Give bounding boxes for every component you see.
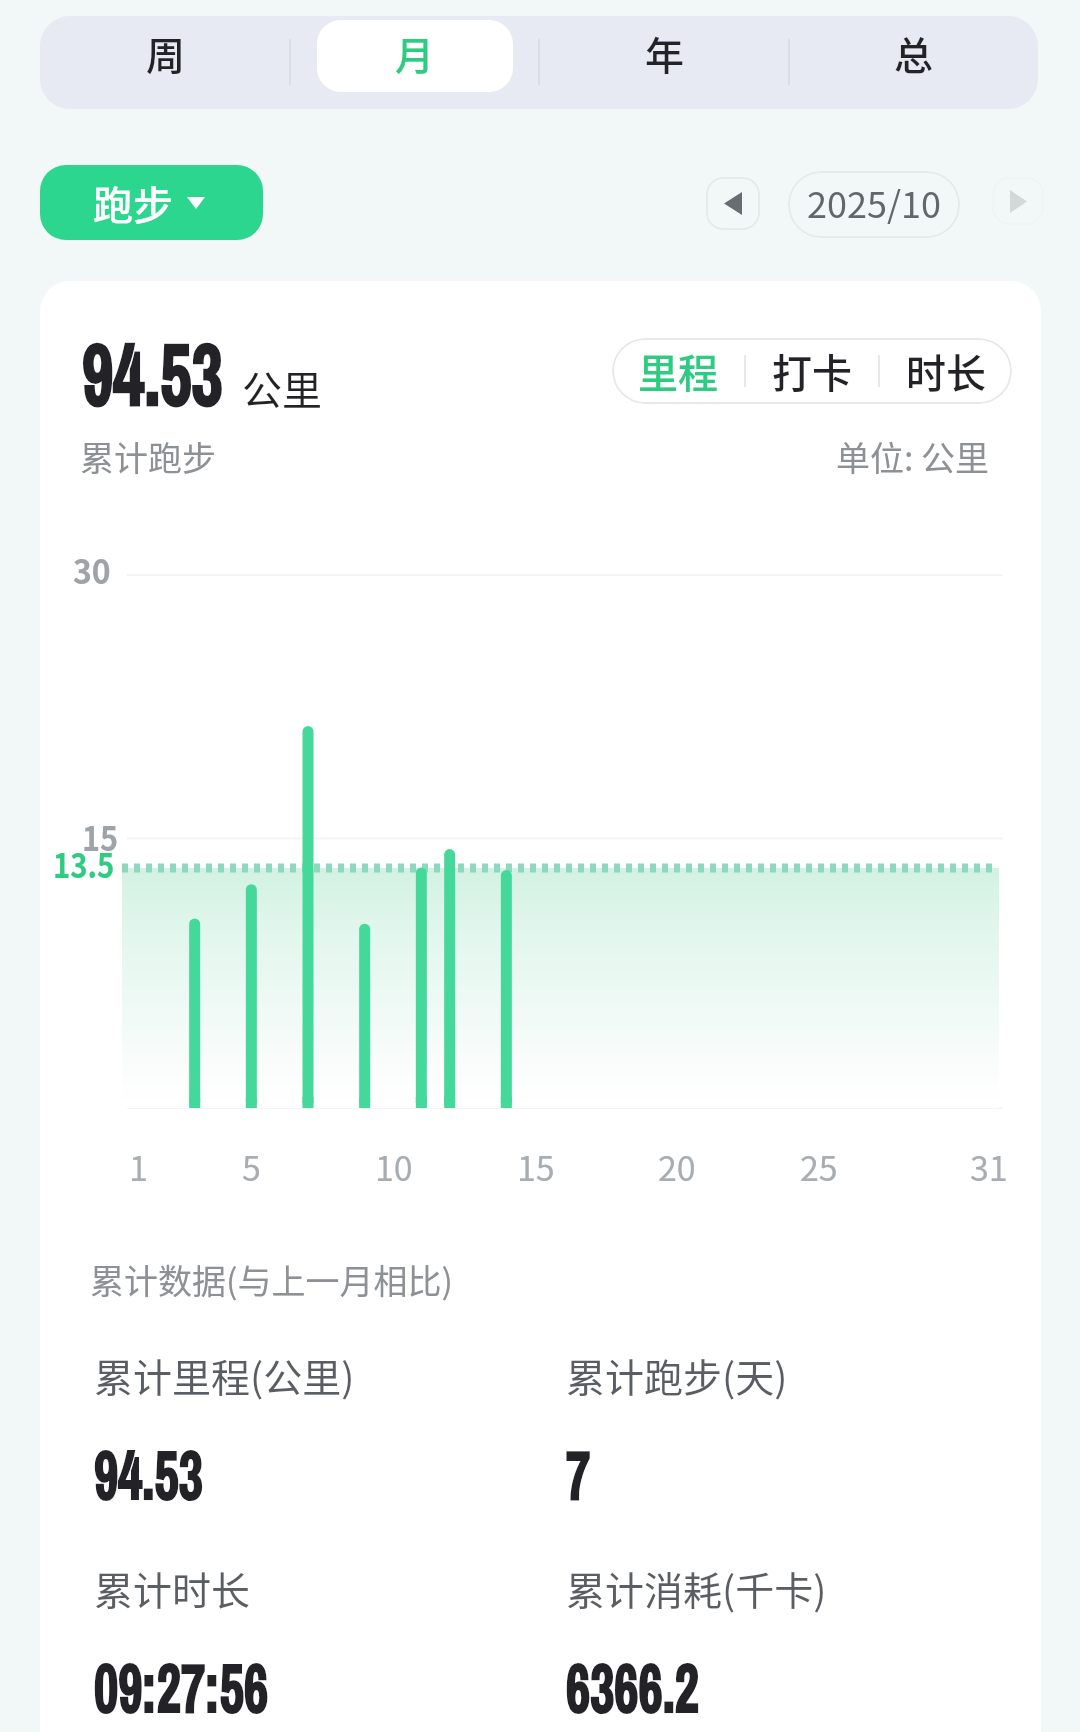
staticText: 7 — [566, 1429, 591, 1521]
staticText: 公里 — [242, 359, 322, 417]
staticText: 累计跑步(天) — [566, 1347, 788, 1403]
button[interactable]: 时长 — [906, 342, 986, 400]
button[interactable]: 打卡 — [772, 342, 852, 400]
staticText: 20 — [658, 1142, 696, 1191]
staticText: 6366.2 — [566, 1642, 699, 1732]
button[interactable]: 跑步 — [40, 165, 263, 240]
staticText: 周 — [146, 25, 186, 81]
button[interactable]: 月 — [289, 16, 538, 109]
button[interactable]: Previous month — [706, 177, 760, 230]
staticText: 31 — [970, 1142, 1008, 1191]
staticText: 13.5 — [53, 839, 115, 888]
staticText: 10 — [375, 1142, 413, 1191]
button[interactable]: Next month — [992, 177, 1044, 225]
staticText: 时长 — [906, 342, 986, 400]
button[interactable]: 2025/10 — [788, 171, 960, 238]
staticText: 2025/10 — [807, 176, 941, 228]
staticText: 15 — [517, 1142, 555, 1191]
staticText: 1 — [129, 1142, 148, 1191]
staticText: 94.53 — [94, 1429, 203, 1521]
button[interactable]: 年 — [539, 16, 788, 109]
staticText: 月 — [395, 25, 435, 81]
staticText: 累计跑步 — [80, 432, 216, 481]
staticText: 年 — [645, 25, 685, 81]
staticText: 30 — [73, 545, 111, 594]
staticText: 累计时长 — [94, 1560, 251, 1616]
staticText: 跑步 — [93, 174, 173, 232]
staticText: 里程 — [638, 342, 718, 400]
staticText: 15 — [82, 812, 119, 861]
button[interactable]: 里程 — [638, 342, 718, 400]
staticText: 25 — [800, 1142, 838, 1191]
staticText: 累计里程(公里) — [94, 1347, 355, 1403]
staticText: 总 — [894, 25, 934, 81]
staticText: 单位: 公里 — [836, 432, 990, 481]
button[interactable]: 总 — [788, 16, 1037, 109]
staticText: 94.53 — [82, 314, 223, 433]
staticText: 累计数据(与上一月相比) — [90, 1255, 453, 1304]
button[interactable]: 周 — [40, 16, 289, 109]
staticText: 打卡 — [772, 342, 852, 400]
staticText: 09:27:56 — [94, 1642, 269, 1732]
staticText: 累计消耗(千卡) — [566, 1560, 827, 1616]
staticText: 5 — [242, 1142, 261, 1191]
